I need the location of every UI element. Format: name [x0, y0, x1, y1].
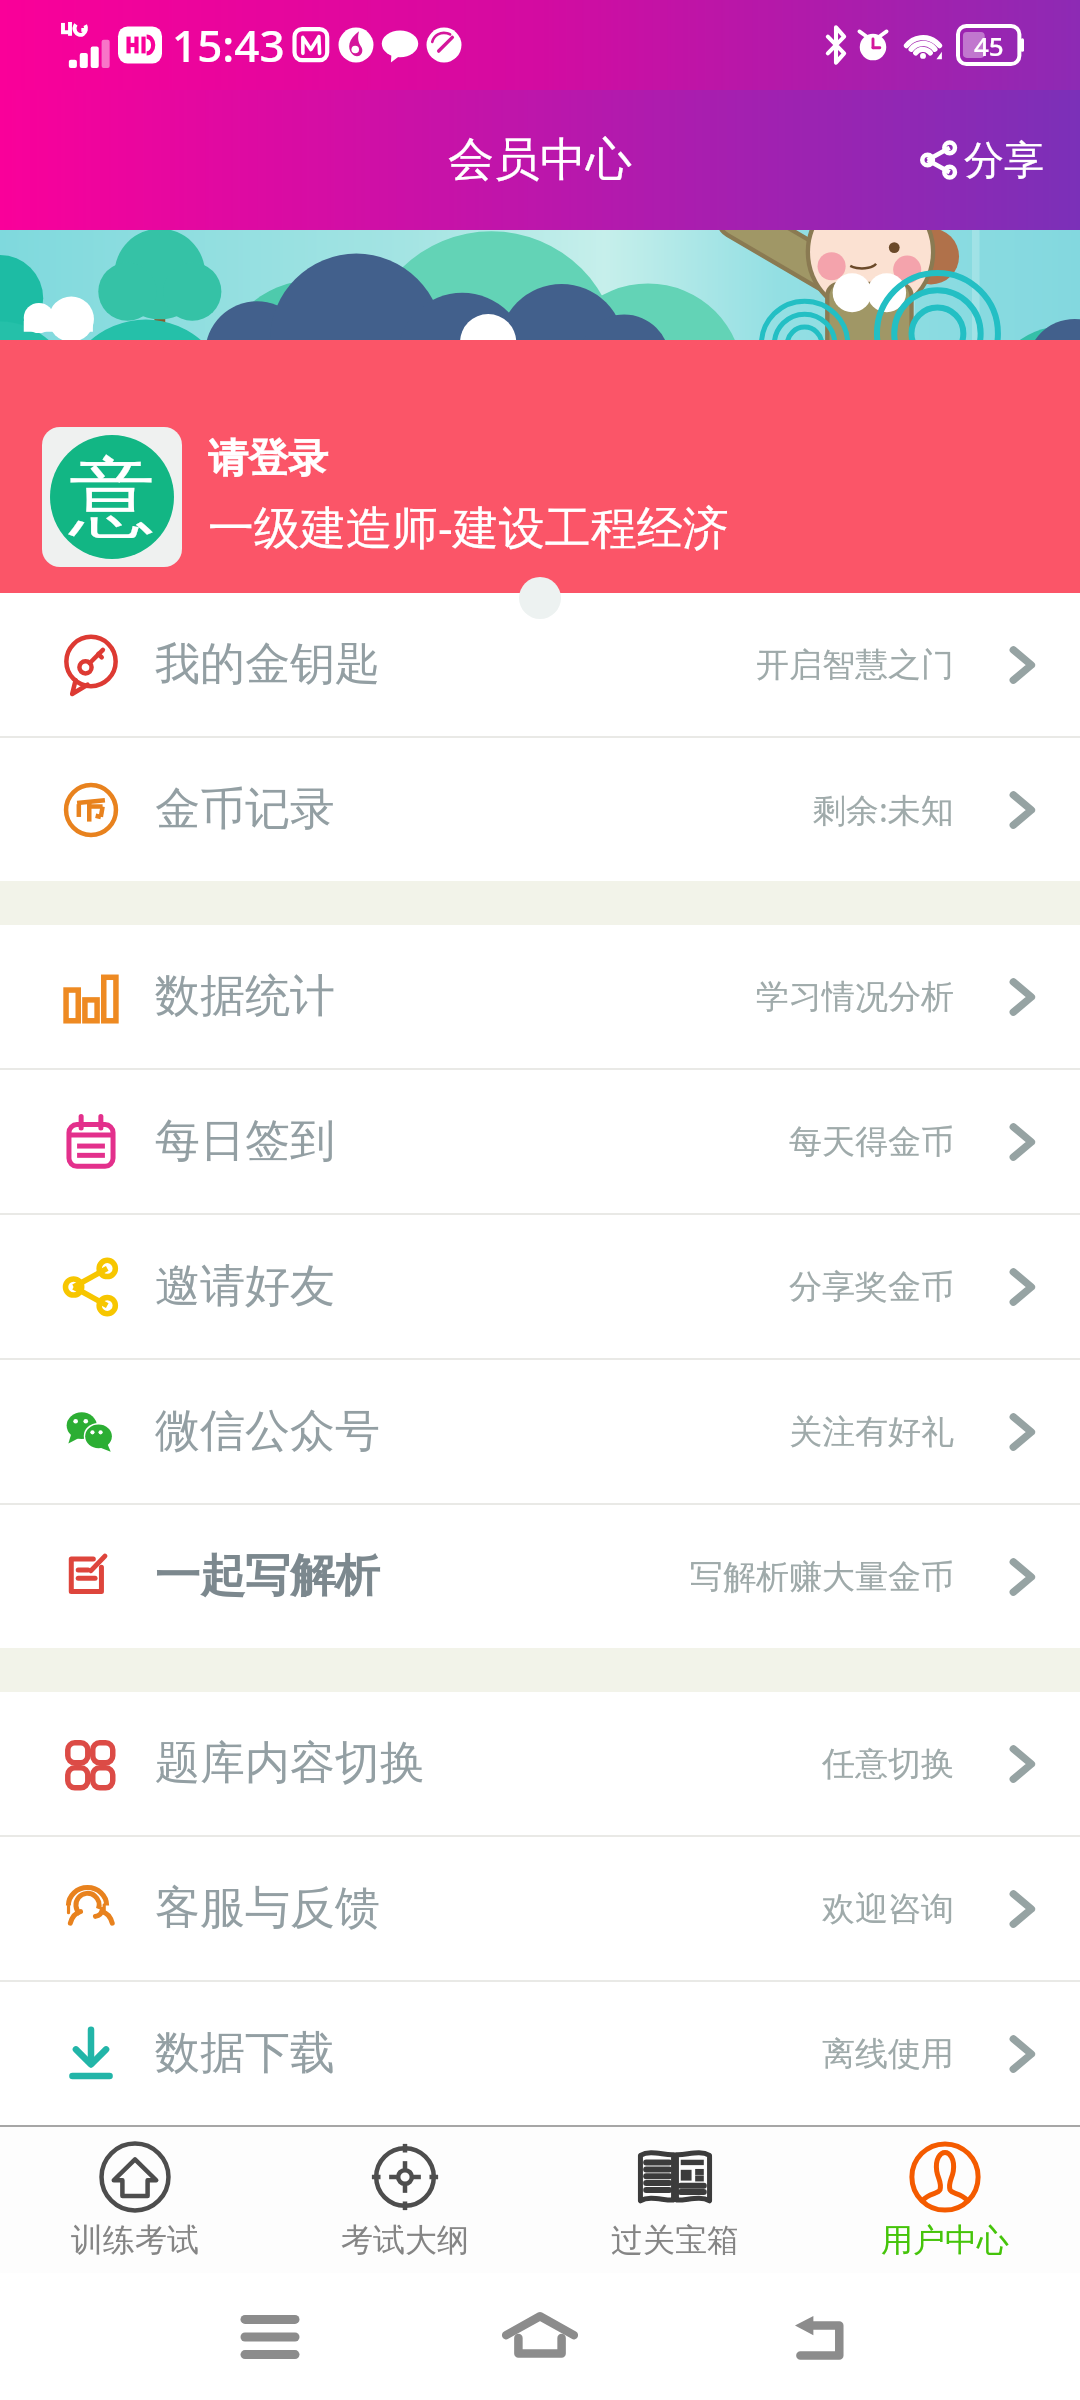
staticText: 每天得金币: [789, 1121, 954, 1163]
staticText: 分享: [964, 135, 1044, 185]
staticText: 每日签到: [155, 1113, 335, 1170]
staticText: 任意切换: [822, 1743, 954, 1785]
staticText: 欢迎咨询: [822, 1888, 954, 1930]
staticText: 训练考试: [71, 2220, 199, 2260]
button[interactable]: 我的金钥匙: [0, 593, 1080, 736]
button[interactable]: 考试大纲: [270, 2127, 540, 2273]
button[interactable]: 微信公众号: [0, 1360, 1080, 1503]
staticText: 会员中心: [448, 131, 632, 189]
staticText: 过关宝箱: [611, 2220, 739, 2260]
staticText: 考试大纲: [341, 2220, 469, 2260]
button[interactable]: 金币记录: [0, 738, 1080, 881]
staticText: 一起写解析: [155, 1548, 380, 1605]
staticText: 分享奖金币: [789, 1266, 954, 1308]
button[interactable]: 训练考试: [0, 2127, 270, 2273]
button[interactable]: 邀请好友: [0, 1215, 1080, 1358]
staticText: 金币记录: [155, 781, 335, 838]
button[interactable]: Recents: [225, 2292, 315, 2382]
staticText: 题库内容切换: [155, 1735, 425, 1792]
button[interactable]: 题库内容切换: [0, 1692, 1080, 1835]
staticText: 我的金钥匙: [155, 636, 380, 693]
staticText: 15:43: [172, 15, 285, 75]
staticText: 一级建造师-建设工程经济: [208, 495, 729, 558]
button[interactable]: 过关宝箱: [540, 2127, 810, 2273]
button[interactable]: 数据统计: [0, 925, 1080, 1068]
button[interactable]: Home: [485, 2282, 595, 2392]
staticText: 客服与反馈: [155, 1880, 380, 1937]
staticText: 45: [974, 28, 1004, 63]
button[interactable]: 一起写解析: [0, 1505, 1080, 1648]
button[interactable]: 客服与反馈: [0, 1837, 1080, 1980]
button[interactable]: 每日签到: [0, 1070, 1080, 1213]
staticText: 数据下载: [155, 2025, 335, 2082]
staticText: 开启智慧之门: [756, 644, 954, 686]
staticText: 请登录: [208, 433, 328, 483]
staticText: 数据统计: [155, 968, 335, 1025]
staticText: 微信公众号: [155, 1403, 380, 1460]
staticText: 学习情况分析: [756, 976, 954, 1018]
staticText: 剩余:未知: [813, 787, 954, 832]
staticText: 意: [69, 443, 155, 551]
staticText: 关注有好礼: [789, 1411, 954, 1453]
button[interactable]: 用户中心: [810, 2127, 1080, 2273]
staticText: 邀请好友: [155, 1258, 335, 1315]
button[interactable]: 数据下载: [0, 1982, 1080, 2125]
staticText: 离线使用: [822, 2033, 954, 2075]
button[interactable]: 分享: [894, 111, 1080, 209]
button[interactable]: Back: [777, 2292, 867, 2382]
staticText: 用户中心: [881, 2220, 1009, 2260]
staticText: 写解析赚大量金币: [690, 1556, 954, 1598]
